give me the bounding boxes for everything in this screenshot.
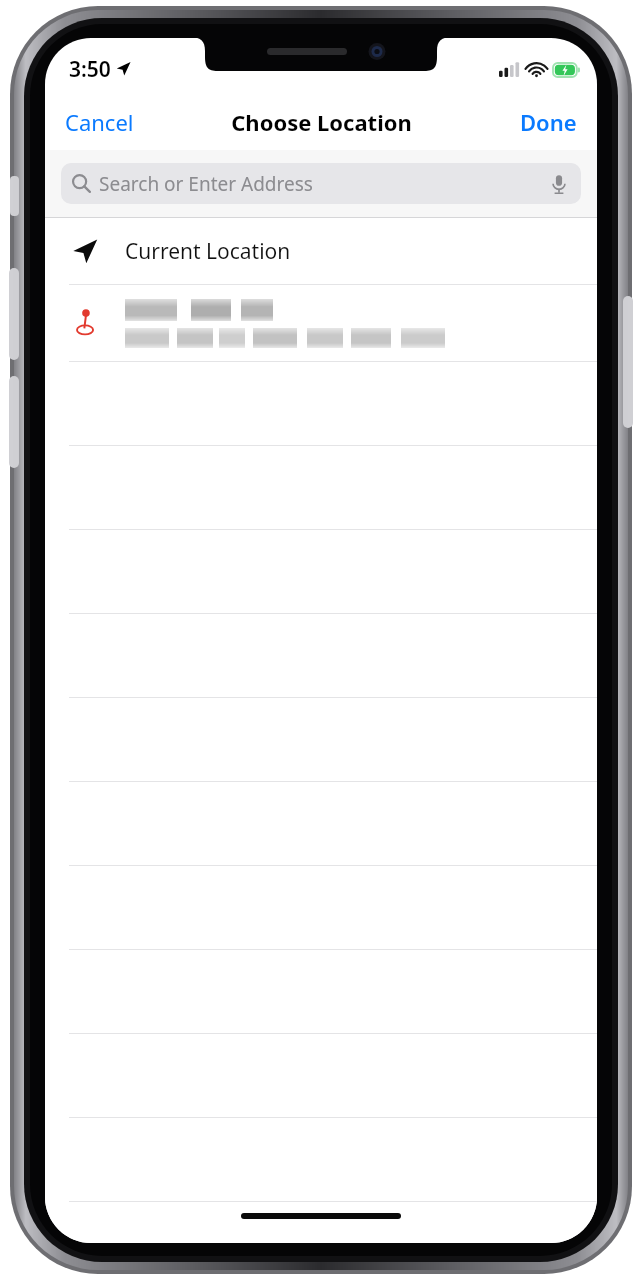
button[interactable] [45,285,597,361]
button[interactable] [45,1202,597,1243]
button[interactable]: Current Location [45,218,597,284]
staticText: Choose Location [231,107,412,137]
button[interactable]: Done [500,97,597,147]
staticText: Current Location [125,237,291,266]
staticText: Cancel [65,107,134,137]
staticText: 3:50 [69,55,111,84]
button[interactable]: Search or Enter Address [61,163,581,204]
staticText: Done [520,107,577,137]
button[interactable]: Voice search [548,173,570,195]
button[interactable]: Cancel [45,97,154,147]
staticText: Search or Enter Address [99,171,313,197]
